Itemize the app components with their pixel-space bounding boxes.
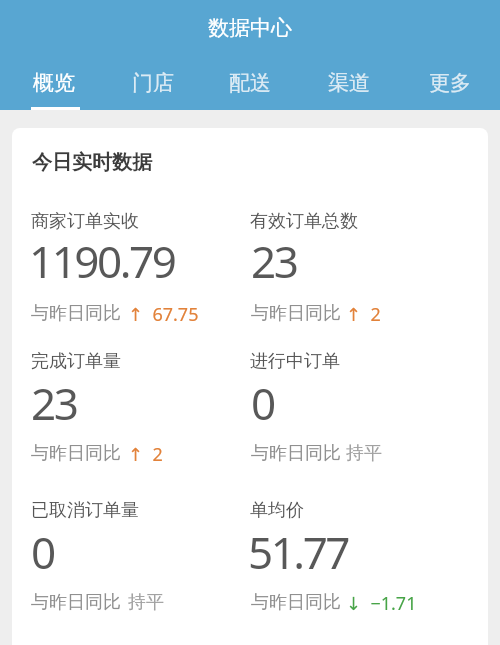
staticText: 1190.79 (29, 231, 175, 291)
staticText: 已取消订单量 (31, 499, 139, 522)
staticText: 数据中心 (208, 15, 292, 41)
staticText: 0 (31, 522, 54, 582)
staticText: 与昨日同比 (251, 591, 341, 614)
staticText: 与昨日同比 (31, 442, 121, 465)
button[interactable]: 配送 (200, 56, 300, 110)
staticText: ↑ 67.75 (128, 302, 199, 327)
button[interactable]: 更多 (400, 56, 500, 110)
staticText: 0 (251, 373, 274, 433)
staticText: 有效订单总数 (250, 210, 358, 233)
button[interactable]: 渠道 (300, 56, 400, 110)
staticText: 门店 (132, 70, 174, 96)
button[interactable]: 门店 (100, 56, 200, 110)
staticText: ↑ 2 (346, 302, 381, 327)
staticText: 与昨日同比 (31, 302, 121, 325)
staticText: 单均价 (250, 499, 304, 522)
staticText: 商家订单实收 (31, 210, 139, 233)
staticText: ↑ 2 (128, 442, 163, 467)
staticText: 23 (31, 373, 77, 433)
staticText: 与昨日同比 (251, 302, 341, 325)
staticText: 更多 (429, 70, 471, 96)
staticText: 今日实时数据 (32, 150, 152, 175)
staticText: 23 (251, 231, 297, 291)
staticText: ↓ −1.71 (346, 591, 417, 616)
staticText: 持平 (128, 591, 164, 614)
staticText: 进行中订单 (250, 350, 340, 373)
staticText: 渠道 (328, 70, 370, 96)
staticText: 持平 (346, 442, 382, 465)
staticText: 完成订单量 (31, 350, 121, 373)
staticText: 与昨日同比 (31, 591, 121, 614)
staticText: 配送 (229, 70, 271, 96)
staticText: 51.77 (248, 522, 348, 582)
staticText: 与昨日同比 (251, 442, 341, 465)
button[interactable]: 概览 (0, 56, 100, 110)
staticText: 概览 (33, 70, 75, 96)
